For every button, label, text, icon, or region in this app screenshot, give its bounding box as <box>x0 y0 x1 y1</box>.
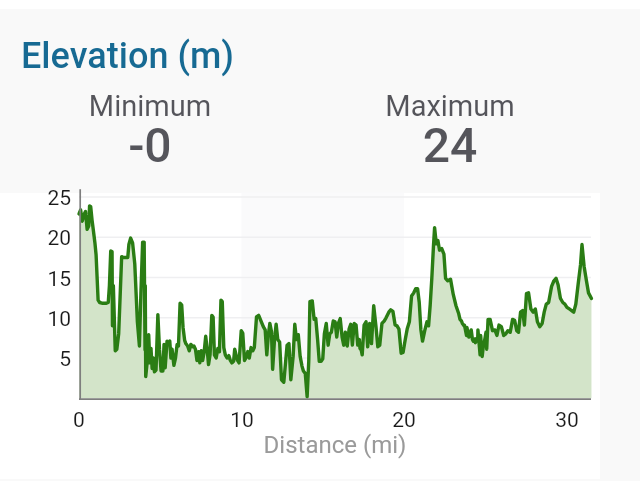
staticText: 24 <box>330 117 570 173</box>
staticText: 10 <box>202 408 282 433</box>
staticText: 25 <box>0 186 71 211</box>
staticText: Minimum <box>30 89 270 123</box>
staticText: 10 <box>0 307 71 332</box>
staticText: 0 <box>39 408 119 433</box>
staticText: 20 <box>0 226 71 251</box>
staticText: Maximum <box>330 89 570 123</box>
staticText: 30 <box>527 408 607 433</box>
other: Elevation profile chart <box>0 0 640 481</box>
button[interactable]: Elevation (m) <box>21 35 235 77</box>
staticText: Elevation (m) <box>21 35 235 77</box>
staticText: 20 <box>364 408 444 433</box>
staticText: 5 <box>0 347 71 372</box>
staticText: Distance (mi) <box>185 431 485 459</box>
staticText: 15 <box>0 267 71 292</box>
button[interactable]: Minimum <box>30 89 270 145</box>
button[interactable]: Maximum <box>330 89 570 145</box>
staticText: -0 <box>30 117 270 173</box>
